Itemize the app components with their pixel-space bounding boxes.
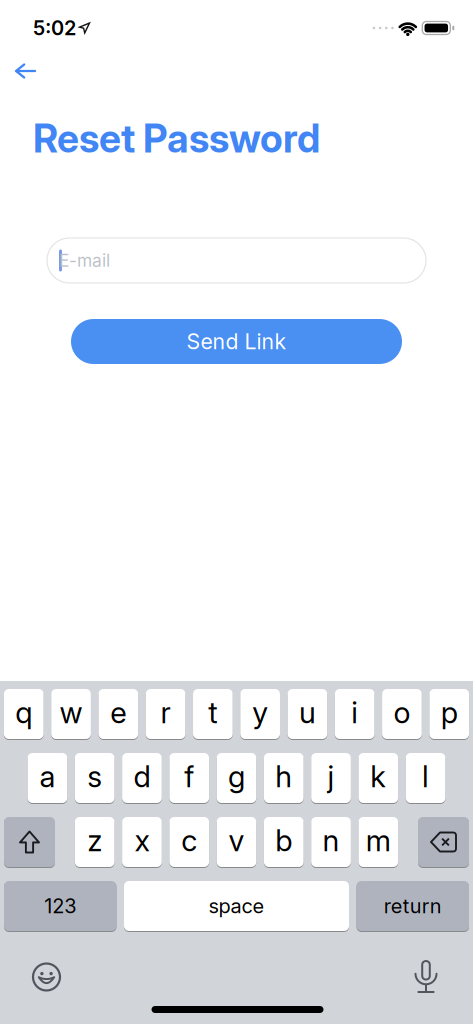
button[interactable]: l xyxy=(406,752,445,803)
staticText: i xyxy=(351,695,358,730)
button[interactable]: g xyxy=(217,752,256,803)
staticText: f xyxy=(184,759,194,794)
staticText: j xyxy=(327,759,334,794)
button[interactable]: Delete xyxy=(418,816,469,867)
button[interactable]: y xyxy=(240,688,280,739)
staticText: o xyxy=(393,695,410,730)
button[interactable]: n xyxy=(311,816,351,867)
staticText: w xyxy=(60,695,83,730)
button[interactable]: Numbers xyxy=(4,880,116,931)
staticText: Reset Password xyxy=(33,116,320,161)
staticText: c xyxy=(181,823,197,858)
staticText: return xyxy=(384,894,442,918)
staticText: s xyxy=(87,759,102,794)
button[interactable]: a xyxy=(28,752,67,803)
staticText: space xyxy=(208,894,264,918)
staticText: g xyxy=(228,759,245,794)
button[interactable]: h xyxy=(264,752,304,803)
staticText: t xyxy=(208,695,217,730)
button[interactable]: z xyxy=(75,816,114,867)
staticText: n xyxy=(322,823,339,858)
staticText: Send Link xyxy=(186,329,286,354)
button[interactable]: q xyxy=(4,688,44,739)
staticText: l xyxy=(422,759,429,794)
button[interactable]: k xyxy=(358,752,398,803)
staticText: 123 xyxy=(44,894,76,918)
staticText: e xyxy=(110,695,126,730)
staticText: 5:02 xyxy=(33,16,76,40)
button[interactable]: o xyxy=(382,688,422,739)
button[interactable]: u xyxy=(288,688,327,739)
staticText: u xyxy=(299,695,316,730)
button[interactable]: Send Link xyxy=(71,319,402,364)
button[interactable]: p xyxy=(429,688,469,739)
button[interactable]: space xyxy=(124,880,349,931)
staticText: E-mail xyxy=(59,250,110,271)
staticText: a xyxy=(39,759,55,794)
staticText: q xyxy=(15,695,32,730)
button[interactable]: i xyxy=(335,688,374,739)
staticText: p xyxy=(441,695,458,730)
button[interactable]: f xyxy=(169,752,209,803)
button[interactable]: Shift xyxy=(4,816,55,867)
button[interactable]: r xyxy=(146,688,185,739)
button[interactable]: v xyxy=(217,816,256,867)
button[interactable]: b xyxy=(264,816,304,867)
button[interactable]: E-mail xyxy=(47,238,426,283)
staticText: m xyxy=(366,823,391,858)
button[interactable]: s xyxy=(75,752,114,803)
staticText: r xyxy=(161,695,171,730)
staticText: y xyxy=(252,695,268,730)
button[interactable]: Dictation xyxy=(409,955,442,999)
button[interactable]: m xyxy=(358,816,398,867)
button[interactable]: e xyxy=(98,688,138,739)
staticText: k xyxy=(370,759,386,794)
button[interactable]: c xyxy=(169,816,209,867)
staticText: x xyxy=(134,823,149,858)
button[interactable]: Back xyxy=(8,56,43,85)
staticText: d xyxy=(133,759,150,794)
staticText: b xyxy=(275,823,292,858)
staticText: v xyxy=(228,823,244,858)
staticText: h xyxy=(275,759,292,794)
button[interactable]: Emoji xyxy=(29,960,63,994)
button[interactable]: Return xyxy=(356,880,469,931)
button[interactable]: w xyxy=(51,688,91,739)
staticText: z xyxy=(87,823,102,858)
button[interactable]: d xyxy=(122,752,162,803)
button[interactable]: j xyxy=(311,752,351,803)
button[interactable]: t xyxy=(193,688,233,739)
button[interactable]: x xyxy=(122,816,162,867)
